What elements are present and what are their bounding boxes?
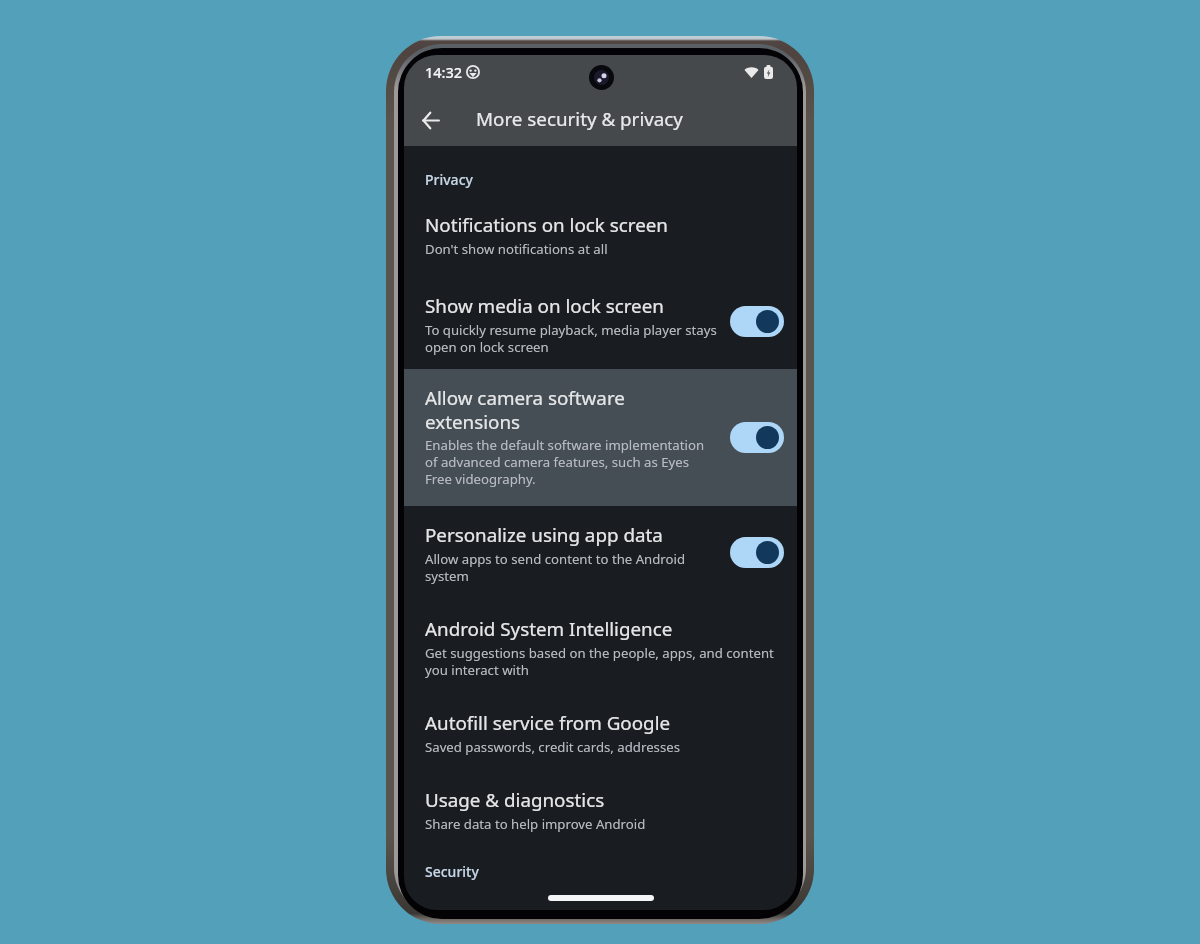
staticText: Get suggestions based on the people, app…: [425, 644, 785, 679]
staticText: Enables the default software implementat…: [425, 436, 715, 488]
staticText: Security: [425, 862, 479, 881]
staticText: More security & privacy: [476, 106, 683, 132]
staticText: Don't show notifications at all: [425, 240, 725, 258]
button[interactable]: Usage & diagnostics: [404, 777, 797, 855]
staticText: Share data to help improve Android: [425, 815, 725, 833]
staticText: Show media on lock screen: [425, 293, 725, 319]
staticText: 14:32: [425, 62, 463, 82]
button[interactable]: Privacy: [404, 159, 797, 189]
staticText: Saved passwords, credit cards, addresses: [425, 738, 725, 756]
staticText: Allow camera software extensions: [425, 385, 630, 434]
button[interactable]: Android System Intelligence: [404, 605, 797, 699]
button[interactable]: Show media on lock screen: [404, 282, 797, 369]
staticText: Personalize using app data: [425, 522, 725, 548]
staticText: Allow apps to send content to the Androi…: [425, 550, 700, 585]
staticText: Notifications on lock screen: [425, 212, 725, 238]
button[interactable]: Notifications on lock screen: [404, 201, 797, 282]
button[interactable]: Personalize using app data: [404, 506, 797, 606]
button[interactable]: Autofill service from Google: [404, 699, 797, 777]
staticText: Privacy: [425, 170, 473, 189]
staticText: Usage & diagnostics: [425, 787, 725, 813]
button[interactable]: Show media on lock screen, on: [730, 306, 784, 337]
button[interactable]: Allow camera software extensions: [404, 369, 797, 506]
staticText: Autofill service from Google: [425, 710, 725, 736]
button[interactable]: Personalize using app data, on: [730, 537, 784, 568]
button[interactable]: Security: [404, 851, 797, 881]
button[interactable]: Navigate back: [411, 100, 451, 140]
staticText: Android System Intelligence: [425, 616, 725, 642]
button[interactable]: Allow camera software extensions, on: [730, 422, 784, 453]
staticText: To quickly resume playback, media player…: [425, 321, 730, 356]
